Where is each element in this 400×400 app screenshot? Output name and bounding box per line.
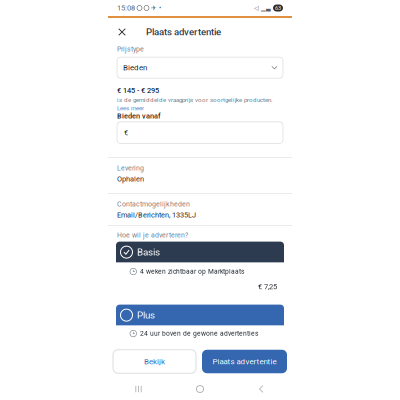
- staticText: € 145 - € 295: [117, 86, 159, 95]
- staticText: Ophalen: [117, 175, 144, 183]
- button[interactable]: Plus: [116, 305, 284, 341]
- staticText: Contactmogelijkheden: [117, 200, 190, 208]
- staticText: ✈: [151, 4, 157, 12]
- staticText: 24 uur boven de gewone advertenties: [140, 330, 258, 337]
- staticText: Bekijk: [144, 357, 165, 366]
- staticText: 4 weken zichtbaar op Marktplaats: [140, 268, 244, 275]
- button[interactable]: Bieden: [117, 57, 283, 78]
- staticText: € 7,25: [258, 282, 277, 291]
- staticText: Bieden: [123, 63, 147, 72]
- button[interactable]: Contactmogelijkheden: [108, 194, 292, 225]
- button[interactable]: Recente apps: [108, 378, 169, 400]
- staticText: €: [124, 128, 128, 137]
- staticText: Email/Berichten, 1335LJ: [117, 211, 196, 219]
- staticText: 15:08: [117, 4, 135, 12]
- staticText: •: [159, 4, 161, 12]
- button[interactable]: Sluiten: [111, 19, 133, 44]
- staticText: Plaats advertentie: [212, 357, 276, 366]
- staticText: is de gemiddelde vraagprijs voor soortge…: [117, 96, 273, 103]
- staticText: Bieden vanaf: [117, 112, 161, 120]
- staticText: Prijstype: [117, 45, 144, 53]
- button[interactable]: Home: [169, 378, 231, 400]
- button[interactable]: Lees meer: [108, 103, 144, 112]
- button[interactable]: Levering: [108, 158, 292, 193]
- staticText: ◁: [254, 4, 259, 11]
- button[interactable]: Plaats advertentie: [202, 350, 287, 373]
- button[interactable]: Bekijk: [113, 350, 196, 373]
- staticText: Plus: [137, 309, 155, 321]
- button[interactable]: Terug: [231, 378, 292, 400]
- staticText: Basis: [137, 246, 160, 258]
- staticText: Levering: [117, 164, 144, 172]
- staticText: Hoe wil je adverteren?: [117, 231, 188, 239]
- staticText: Lees meer: [117, 104, 144, 112]
- staticText: ▁▃: [261, 4, 271, 11]
- button[interactable]: Basis: [116, 242, 284, 298]
- staticText: 63: [275, 5, 281, 11]
- staticText: Plaats advertentie: [146, 26, 221, 38]
